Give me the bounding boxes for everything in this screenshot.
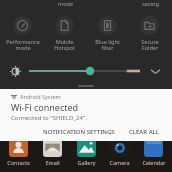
- staticText: Gallery: [77, 159, 96, 166]
- button[interactable]: Camera: [104, 138, 135, 166]
- button[interactable]: Mobile Hotspot: [44, 14, 85, 54]
- staticText: Calendar: [142, 159, 166, 166]
- staticText: mode: [58, 0, 73, 7]
- staticText: Camera: [109, 159, 130, 166]
- staticText: Blue light filter: [95, 38, 120, 52]
- staticText: NOTIFICATION SETTINGS: [43, 128, 115, 136]
- staticText: Mobile Hotspot: [54, 38, 75, 52]
- button[interactable]: Email: [37, 138, 68, 166]
- button[interactable]: [29, 63, 140, 79]
- button[interactable]: NOTIFICATION SETTINGS: [38, 125, 120, 139]
- staticText: saving: [142, 0, 159, 7]
- button[interactable]: CLEAR ALL: [124, 125, 164, 139]
- button[interactable]: Android System: [0, 89, 172, 141]
- button[interactable]: Expand brightness settings: [148, 64, 162, 78]
- other: Brightness: [10, 66, 21, 77]
- button[interactable]: Gallery: [71, 138, 102, 166]
- staticText: Email: [45, 159, 60, 166]
- button[interactable]: Secure Folder: [129, 14, 170, 54]
- staticText: Connected to "SHIELD_24".: [11, 114, 87, 122]
- staticText: CLEAR ALL: [129, 128, 159, 136]
- button[interactable]: Performance mode: [2, 14, 43, 54]
- staticText: Performance mode: [6, 38, 40, 52]
- staticText: Contacts: [7, 159, 30, 166]
- button[interactable]: Calendar: [138, 138, 169, 166]
- button[interactable]: Blue light filter: [87, 14, 128, 54]
- button[interactable]: Contacts: [3, 138, 34, 166]
- staticText: Android System: [20, 93, 61, 100]
- staticText: Secure Folder: [141, 38, 159, 52]
- staticText: Wi-Fi connected: [11, 101, 79, 113]
